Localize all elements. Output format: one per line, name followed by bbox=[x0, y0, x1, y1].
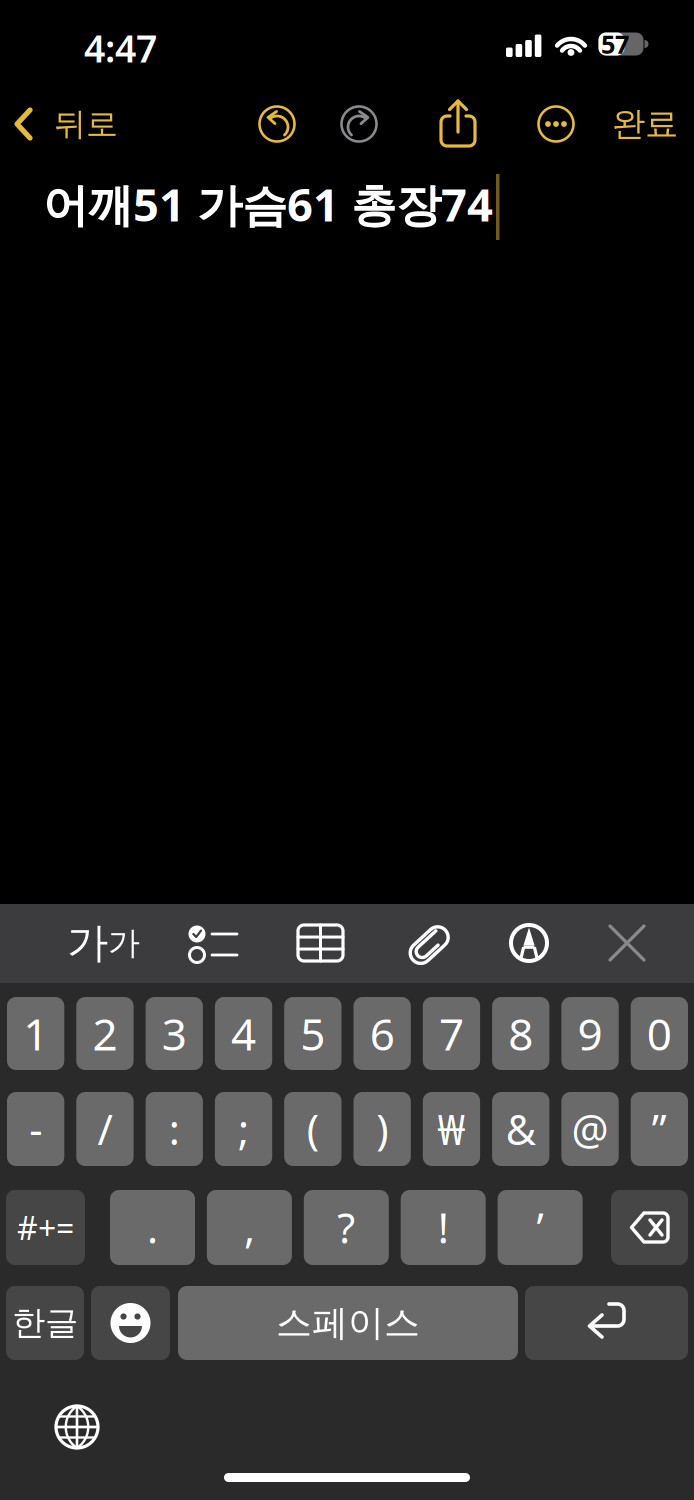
staticText: ₩ bbox=[437, 1102, 465, 1156]
staticText: ) bbox=[376, 1102, 388, 1156]
button[interactable]: Attach bbox=[400, 913, 458, 973]
button[interactable]: Hide keyboard bbox=[598, 913, 656, 973]
button[interactable]: Table bbox=[292, 913, 350, 973]
button[interactable]: ; bbox=[215, 1092, 272, 1166]
button[interactable]: , bbox=[207, 1190, 292, 1265]
staticText: 가 bbox=[67, 918, 108, 968]
staticText: , bbox=[244, 1200, 255, 1255]
button[interactable]: #+= bbox=[6, 1190, 85, 1265]
staticText: 어깨51 가슴61 총장74 bbox=[43, 174, 493, 234]
button[interactable]: 4 bbox=[215, 997, 272, 1070]
button[interactable]: 3 bbox=[146, 997, 203, 1070]
button[interactable]: Return bbox=[525, 1286, 688, 1360]
staticText: 0 bbox=[647, 1004, 672, 1063]
staticText: 스페이스 bbox=[276, 1301, 420, 1345]
staticText: 완료 bbox=[612, 103, 678, 144]
button[interactable]: ₩ bbox=[423, 1092, 480, 1166]
button[interactable]: ? bbox=[304, 1190, 389, 1265]
staticText: 57 bbox=[601, 27, 629, 61]
staticText: / bbox=[97, 1102, 112, 1156]
staticText: & bbox=[506, 1102, 536, 1156]
staticText: ’ bbox=[537, 1200, 544, 1255]
button[interactable]: Redo bbox=[331, 96, 387, 152]
button[interactable]: Emoji bbox=[91, 1286, 170, 1360]
button[interactable]: Markup bbox=[500, 913, 558, 973]
staticText: #+= bbox=[17, 1206, 74, 1249]
staticText: 9 bbox=[577, 1004, 602, 1063]
button[interactable]: 가 bbox=[67, 913, 149, 973]
button[interactable]: @ bbox=[561, 1092, 619, 1166]
button[interactable]: 7 bbox=[423, 997, 480, 1070]
staticText: ( bbox=[307, 1102, 319, 1156]
button[interactable]: More bbox=[528, 96, 584, 152]
button[interactable]: 0 bbox=[631, 997, 688, 1070]
button[interactable]: Checklist bbox=[185, 913, 247, 973]
button[interactable]: ! bbox=[401, 1190, 486, 1265]
staticText: 4:47 bbox=[84, 23, 157, 73]
button[interactable]: 6 bbox=[353, 997, 411, 1070]
button[interactable]: 1 bbox=[7, 997, 64, 1070]
staticText: 7 bbox=[439, 1004, 464, 1063]
button[interactable]: 한글 bbox=[6, 1286, 84, 1360]
button[interactable]: 스페이스 bbox=[178, 1286, 518, 1360]
staticText: ? bbox=[337, 1200, 355, 1255]
staticText: 2 bbox=[92, 1004, 117, 1063]
staticText: 6 bbox=[370, 1004, 395, 1063]
button[interactable]: : bbox=[146, 1092, 203, 1166]
staticText: 1 bbox=[23, 1004, 48, 1063]
staticText: 한글 bbox=[12, 1302, 78, 1343]
staticText: 4 bbox=[231, 1004, 256, 1063]
button[interactable]: . bbox=[110, 1190, 195, 1265]
staticText: 8 bbox=[508, 1004, 533, 1063]
button[interactable]: & bbox=[492, 1092, 549, 1166]
button[interactable]: 뒤로 bbox=[11, 96, 151, 152]
staticText: ! bbox=[438, 1200, 449, 1255]
staticText: 3 bbox=[162, 1004, 187, 1063]
staticText: ; bbox=[238, 1102, 249, 1156]
staticText: @ bbox=[571, 1102, 608, 1156]
button[interactable]: ’ bbox=[498, 1190, 583, 1265]
button[interactable]: 완료 bbox=[600, 98, 690, 150]
staticText: ” bbox=[652, 1102, 667, 1156]
staticText: - bbox=[29, 1102, 42, 1156]
staticText: : bbox=[169, 1102, 180, 1156]
button[interactable]: Share bbox=[430, 94, 486, 154]
button[interactable]: 5 bbox=[284, 997, 341, 1070]
button[interactable]: 8 bbox=[492, 997, 549, 1070]
button[interactable]: ” bbox=[631, 1092, 688, 1166]
button[interactable]: 9 bbox=[561, 997, 619, 1070]
button[interactable]: Switch keyboard bbox=[48, 1398, 106, 1456]
button[interactable]: - bbox=[7, 1092, 64, 1166]
staticText: 뒤로 bbox=[54, 104, 118, 144]
button[interactable]: Delete bbox=[611, 1190, 688, 1265]
button[interactable]: Undo bbox=[249, 96, 305, 152]
button[interactable]: ( bbox=[284, 1092, 341, 1166]
staticText: 가 bbox=[108, 923, 140, 963]
staticText: . bbox=[147, 1200, 158, 1255]
button[interactable]: 2 bbox=[76, 997, 134, 1070]
button[interactable]: / bbox=[76, 1092, 134, 1166]
staticText: 5 bbox=[300, 1004, 325, 1063]
button[interactable]: ) bbox=[353, 1092, 411, 1166]
